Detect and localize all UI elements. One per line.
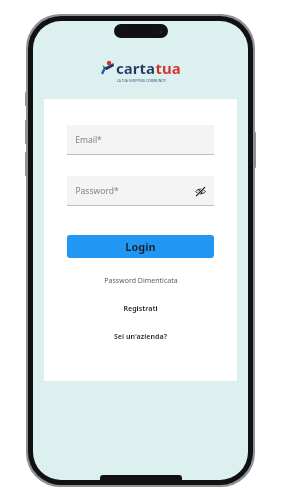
staticText: Sei un'azienda?: [114, 332, 167, 342]
staticText: Registrati: [123, 304, 158, 314]
button[interactable]: Sei un'azienda?: [67, 331, 214, 343]
button[interactable]: Password Dimenticata: [67, 275, 214, 287]
button[interactable]: Password*: [67, 176, 214, 206]
staticText: carta: [116, 58, 155, 78]
staticText: Password Dimenticata: [104, 276, 178, 286]
button[interactable]: Login: [67, 235, 214, 258]
button[interactable]: Registrati: [67, 303, 214, 315]
staticText: Login: [125, 239, 156, 254]
staticText: Password*: [75, 185, 119, 197]
button[interactable]: Show password: [193, 184, 207, 198]
button[interactable]: Email*: [67, 125, 214, 155]
staticText: tua: [155, 58, 181, 78]
staticText: Email*: [75, 134, 102, 146]
staticText: LA TUA SHOPPING COMMUNITY: [117, 79, 166, 83]
